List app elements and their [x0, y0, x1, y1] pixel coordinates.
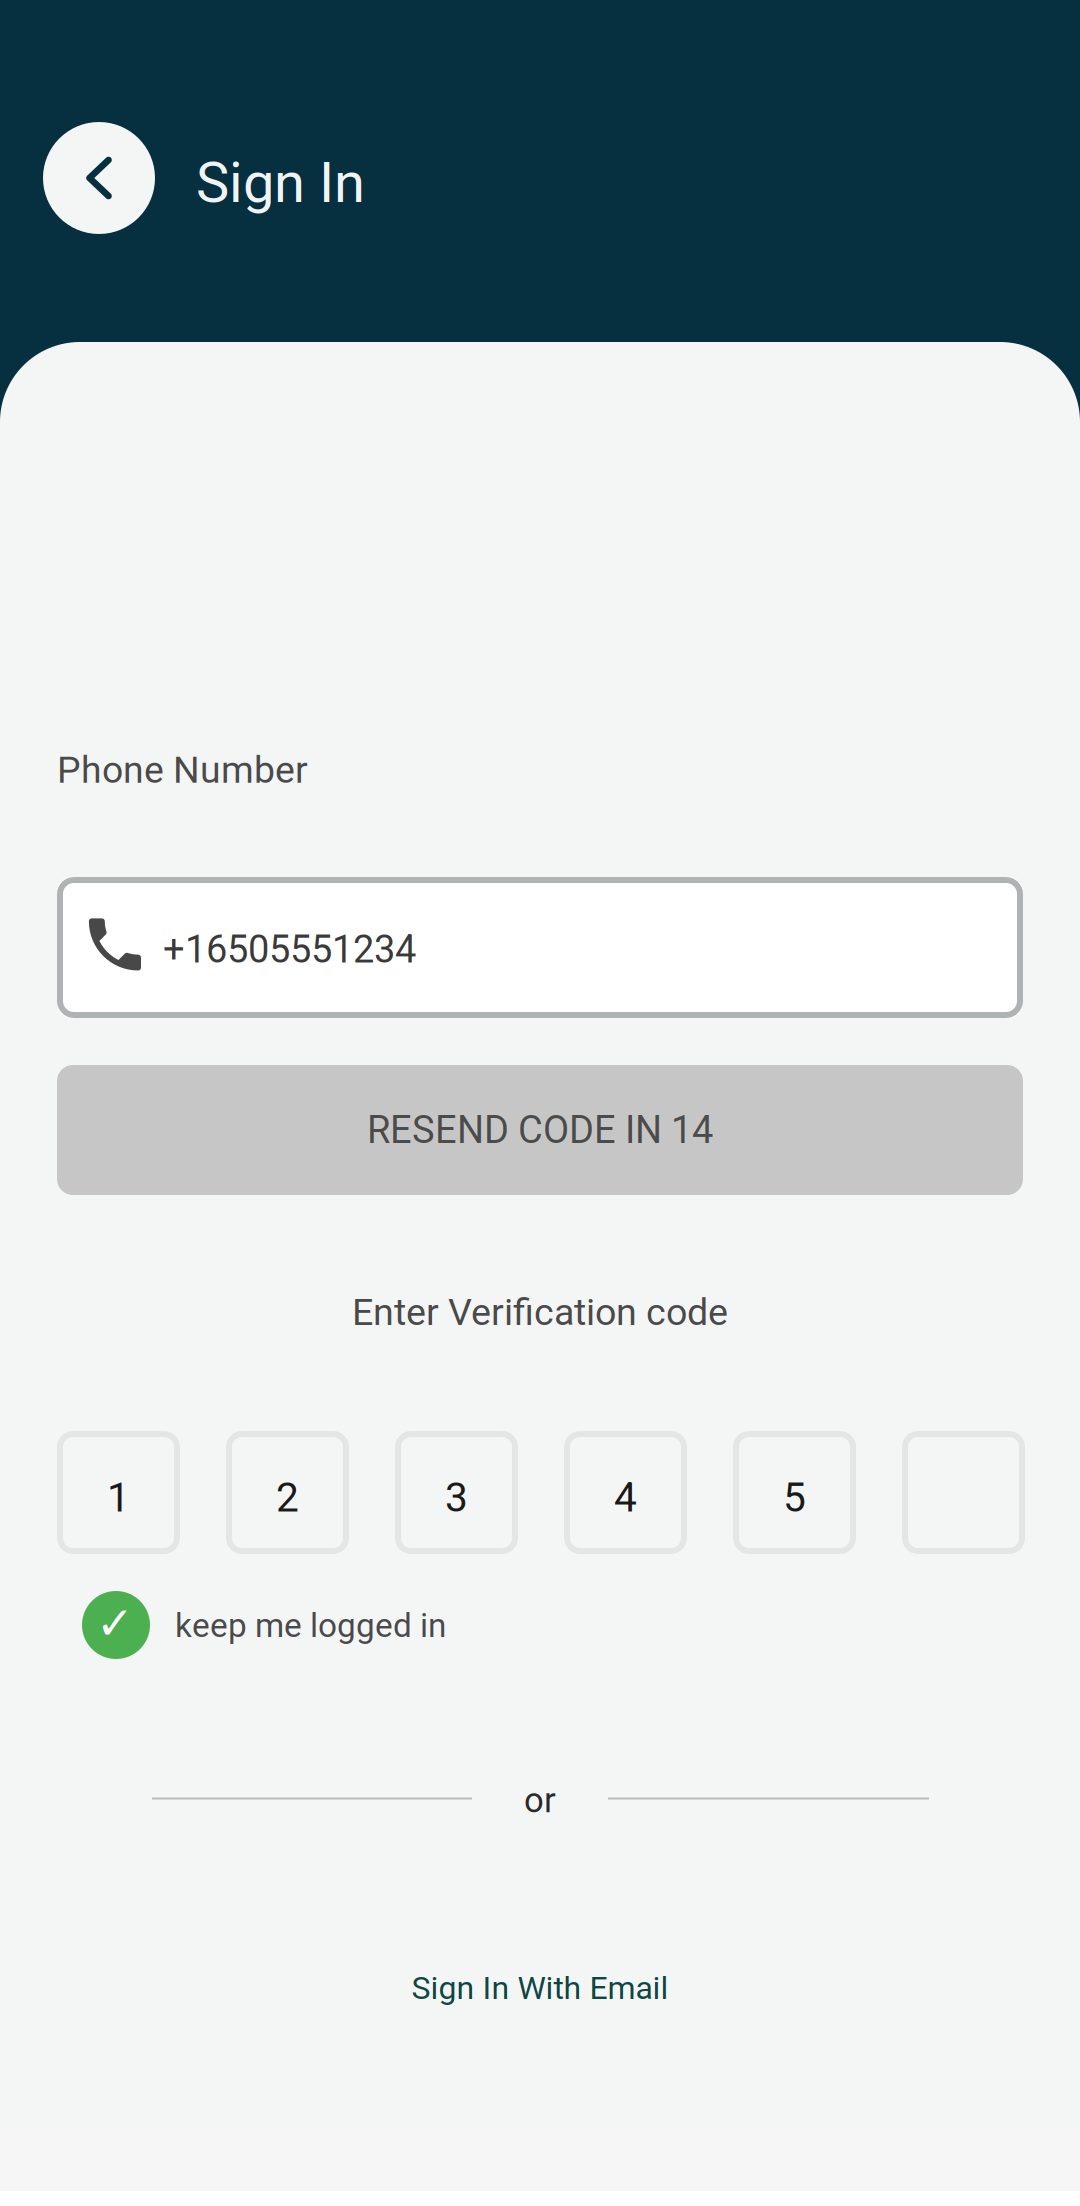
button[interactable]: 2: [226, 1431, 349, 1554]
staticText: Phone Number: [57, 748, 308, 792]
button[interactable]: RESEND CODE IN 14: [57, 1065, 1023, 1195]
button[interactable]: Back: [43, 122, 155, 234]
button[interactable]: [902, 1431, 1025, 1554]
staticText: 3: [445, 1474, 468, 1521]
button[interactable]: ✓: [82, 1591, 492, 1659]
button[interactable]: 4: [564, 1431, 687, 1554]
staticText: +16505551234: [163, 927, 416, 972]
staticText: RESEND CODE IN 14: [367, 1108, 713, 1152]
button[interactable]: Sign In With Email: [0, 1966, 1080, 2010]
staticText: 4: [614, 1474, 637, 1521]
button[interactable]: 1: [57, 1431, 180, 1554]
button[interactable]: 3: [395, 1431, 518, 1554]
staticText: or: [524, 1780, 556, 1821]
staticText: Sign In: [196, 150, 365, 216]
staticText: Enter Verification code: [352, 1290, 728, 1334]
staticText: 5: [783, 1474, 806, 1521]
staticText: 2: [276, 1474, 299, 1521]
staticText: 1: [107, 1474, 130, 1521]
button[interactable]: 5: [733, 1431, 856, 1554]
staticText: keep me logged in: [175, 1606, 446, 1645]
staticText: ✓: [96, 1597, 134, 1649]
staticText: Sign In With Email: [411, 1969, 668, 2007]
